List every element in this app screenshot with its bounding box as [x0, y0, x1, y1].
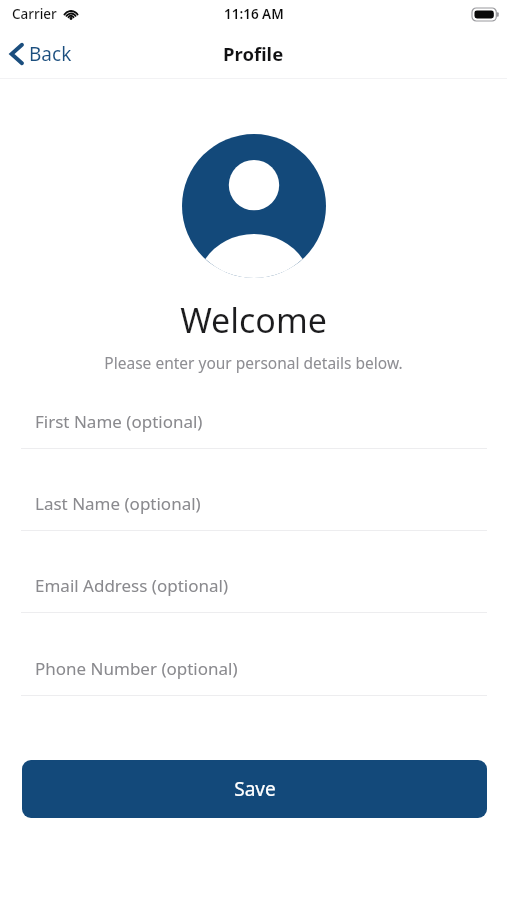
button[interactable]: Last Name (optional)	[21, 480, 487, 531]
staticText: 11:16 AM	[224, 5, 284, 23]
button[interactable]: Save	[22, 760, 487, 818]
staticText: Profile	[223, 41, 284, 66]
staticText: Email Address (optional)	[35, 574, 229, 597]
staticText: Welcome	[180, 297, 327, 343]
staticText: Back	[29, 41, 72, 67]
button[interactable]: First Name (optional)	[21, 398, 487, 449]
staticText: Carrier	[12, 5, 57, 23]
button[interactable]: Back	[0, 32, 84, 76]
staticText: Save	[234, 776, 276, 802]
button[interactable]: Email Address (optional)	[21, 562, 487, 613]
staticText: Please enter your personal details below…	[104, 352, 403, 373]
button[interactable]: Phone Number (optional)	[21, 645, 487, 696]
staticText: Phone Number (optional)	[35, 657, 238, 680]
staticText: Last Name (optional)	[35, 492, 201, 515]
staticText: First Name (optional)	[35, 410, 203, 433]
